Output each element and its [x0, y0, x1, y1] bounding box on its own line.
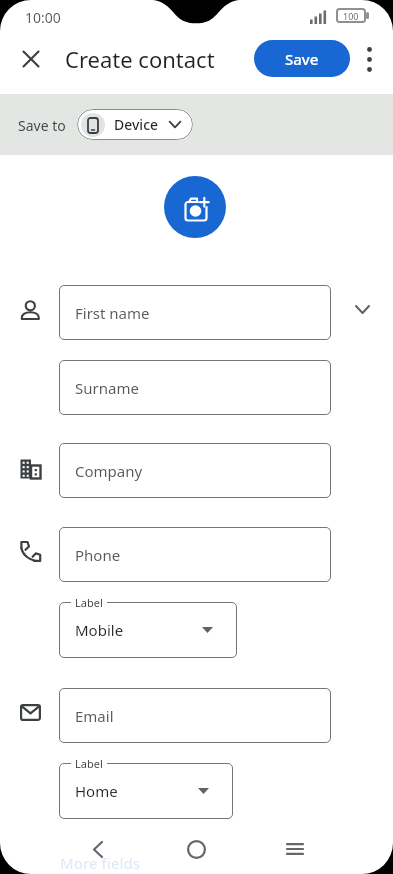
- staticText: 10:00: [25, 8, 61, 27]
- staticText: First name: [75, 303, 150, 323]
- staticText: Company: [75, 461, 143, 481]
- button[interactable]: Company: [59, 443, 331, 498]
- staticText: Mobile: [75, 620, 124, 640]
- button[interactable]: [74, 830, 122, 868]
- button[interactable]: Device: [77, 109, 193, 140]
- staticText: Save: [285, 49, 319, 69]
- staticText: Phone: [75, 545, 121, 565]
- staticText: Device: [114, 115, 159, 134]
- staticText: Surname: [75, 378, 139, 398]
- button[interactable]: Phone: [59, 527, 331, 582]
- button[interactable]: Save: [254, 40, 350, 77]
- staticText: Label: [75, 756, 103, 771]
- staticText: Label: [75, 595, 103, 610]
- button[interactable]: [353, 41, 386, 77]
- button[interactable]: [164, 176, 226, 238]
- button[interactable]: Home: [59, 763, 233, 819]
- staticText: Home: [75, 781, 118, 801]
- button[interactable]: [172, 830, 220, 868]
- button[interactable]: [271, 830, 319, 868]
- staticText: Create contact: [65, 44, 215, 74]
- button[interactable]: [13, 41, 49, 77]
- staticText: Email: [75, 706, 114, 726]
- staticText: More fields: [60, 853, 141, 873]
- button[interactable]: Email: [59, 688, 331, 743]
- staticText: Save to: [18, 116, 66, 135]
- staticText: 100: [343, 10, 359, 22]
- button[interactable]: First name: [59, 285, 331, 340]
- button[interactable]: Mobile: [59, 602, 237, 658]
- button[interactable]: Surname: [59, 360, 331, 415]
